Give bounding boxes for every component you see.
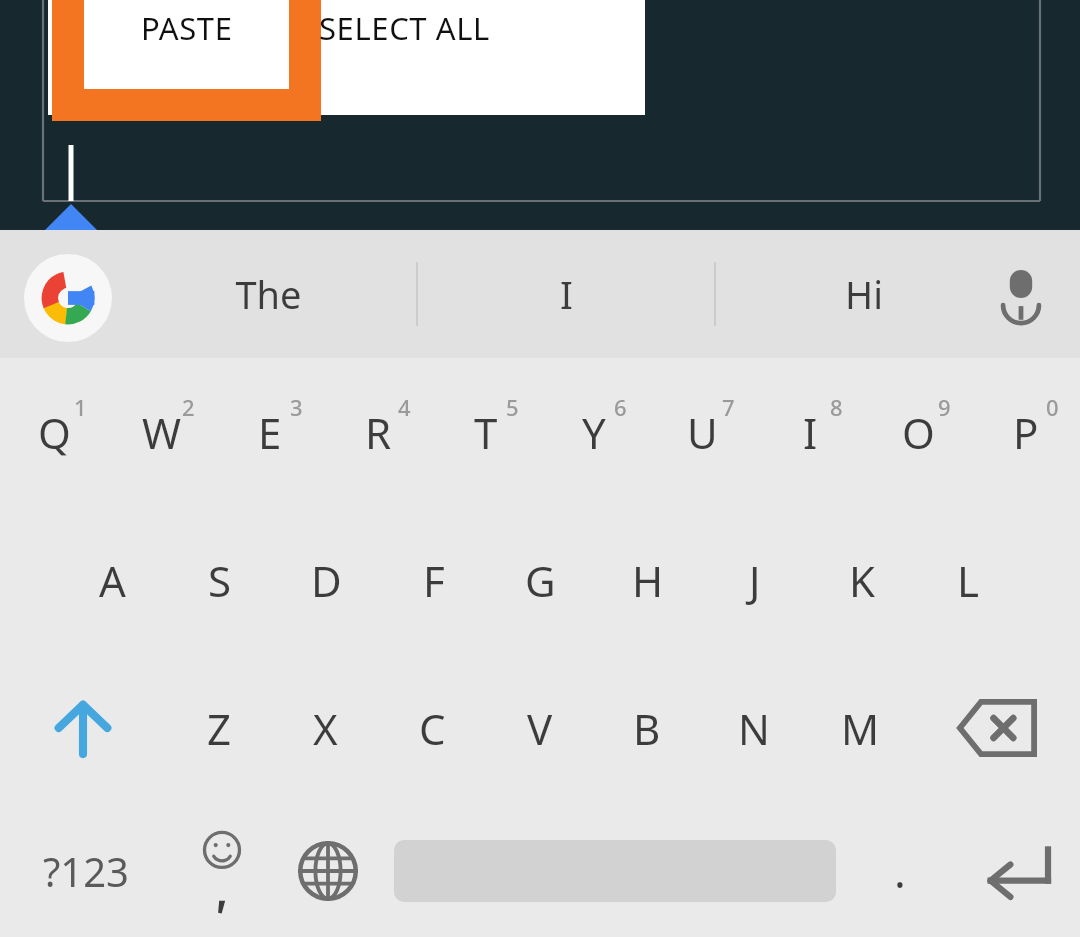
staticText: I [803,404,818,461]
staticText: K [849,552,875,609]
staticText: D [311,552,342,609]
staticText: P [1013,404,1039,461]
staticText: PASTE [141,7,233,49]
button[interactable]: Backspace [914,654,1080,802]
staticText: Hi [845,268,883,320]
staticText: F [423,552,445,609]
staticText: Y [582,404,606,461]
button[interactable]: D [273,506,380,654]
button[interactable]: The [120,230,416,358]
button[interactable]: M [807,654,914,802]
staticText: 6 [614,392,627,422]
staticText: W [142,404,182,461]
button[interactable]: P [972,358,1080,506]
button[interactable]: C [379,654,486,802]
staticText: Q [38,404,71,461]
button[interactable]: E [216,358,324,506]
staticText: G [525,552,556,609]
staticText: R [365,404,392,461]
button[interactable]: SELECT ALL [319,0,619,105]
staticText: ?123 [43,844,129,898]
button[interactable]: K [808,506,915,654]
button[interactable]: I [756,358,864,506]
button[interactable]: G [487,506,594,654]
button[interactable]: . [846,802,954,937]
staticText: U [687,404,718,461]
button[interactable]: O [864,358,972,506]
staticText: SELECT ALL [319,7,490,49]
button[interactable]: Google search [24,254,112,342]
staticText: I [560,268,573,320]
button[interactable]: X [272,654,379,802]
staticText: L [957,552,980,609]
staticText: 9 [938,392,951,422]
staticText: E [258,404,282,461]
staticText: 7 [722,392,735,422]
button[interactable]: U [648,358,756,506]
button[interactable]: N [700,654,807,802]
button[interactable]: W [108,358,216,506]
staticText: H [632,552,664,609]
button[interactable]: L [915,506,1022,654]
staticText: B [633,700,661,757]
staticText: N [738,700,770,757]
staticText: 8 [830,392,843,422]
button[interactable]: H [594,506,701,654]
button[interactable]: Z [166,654,272,802]
staticText: T [474,404,498,461]
button[interactable]: Q [0,358,108,506]
button[interactable]: T [432,358,540,506]
staticText: The [235,268,302,320]
staticText: S [208,552,232,609]
button[interactable]: Hi [716,230,1012,358]
staticText: X [313,700,338,757]
button[interactable]: J [701,506,808,654]
button[interactable]: A [58,506,166,654]
staticText: 5 [506,392,519,422]
staticText: O [902,404,935,461]
staticText: M [841,700,880,757]
staticText: 4 [398,392,411,422]
button[interactable]: Enter [954,802,1080,937]
button[interactable]: Shift [0,654,166,802]
button[interactable]: V [486,654,593,802]
button[interactable]: Emoji [172,802,272,937]
staticText: A [99,552,126,609]
staticText: 0 [1046,392,1059,422]
button[interactable]: Change language [272,802,384,937]
button[interactable]: S [166,506,273,654]
button[interactable]: ?123 [0,802,172,937]
staticText: C [419,700,446,757]
button[interactable]: I [418,230,714,358]
staticText: 2 [182,392,195,422]
button[interactable]: R [324,358,432,506]
button[interactable]: PASTE [68,0,305,105]
staticText: J [749,552,761,609]
button[interactable]: Y [540,358,648,506]
staticText: V [527,700,553,757]
staticText: . [894,841,906,901]
button[interactable]: Voice input [978,230,1064,358]
button[interactable]: F [380,506,487,654]
staticText: 1 [74,392,87,422]
staticText: 3 [290,392,303,422]
staticText: Z [207,700,232,757]
button[interactable]: B [593,654,700,802]
